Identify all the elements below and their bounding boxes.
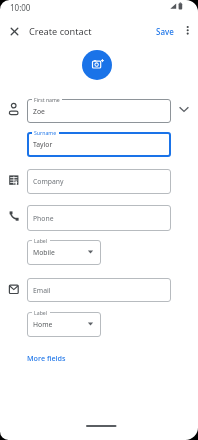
button[interactable] — [183, 24, 193, 38]
button[interactable]: Email — [27, 278, 171, 302]
button[interactable]: Taylor — [27, 132, 171, 157]
staticText: Home — [33, 320, 53, 329]
staticText: Surname — [34, 129, 57, 136]
staticText: Mobile — [33, 248, 55, 257]
button[interactable] — [176, 101, 192, 117]
staticText: Email — [33, 286, 51, 295]
staticText: Company — [33, 177, 64, 186]
staticText: Zoe — [33, 107, 45, 116]
staticText: Save — [156, 26, 174, 37]
staticText: Label — [34, 309, 48, 316]
button[interactable]: Phone — [27, 205, 171, 231]
button[interactable] — [8, 25, 21, 38]
button[interactable] — [82, 50, 112, 80]
button[interactable]: Company — [27, 169, 171, 194]
button[interactable]: More fields — [27, 352, 69, 363]
staticText: Taylor — [33, 140, 53, 149]
button[interactable]: Zoe — [27, 99, 171, 123]
staticText: 10:00 — [10, 2, 31, 12]
button[interactable]: Mobile — [27, 240, 101, 265]
button[interactable]: Save — [152, 24, 178, 38]
button[interactable]: Home — [27, 312, 101, 337]
staticText: Phone — [33, 214, 54, 223]
staticText: Create contact — [29, 25, 92, 38]
staticText: More fields — [27, 353, 66, 363]
staticText: First name — [34, 96, 60, 103]
staticText: Label — [34, 237, 48, 244]
